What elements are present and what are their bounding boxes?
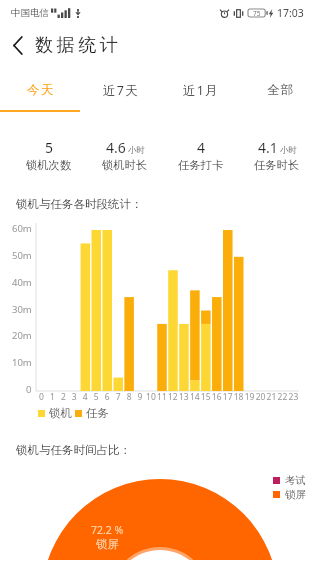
button[interactable]: 近7天 <box>80 74 160 112</box>
staticText: 中国电信 <box>11 7 49 19</box>
button[interactable]: 返回 <box>0 28 36 62</box>
staticText: 锁屏 <box>285 488 306 501</box>
staticText: 任务时长 <box>254 158 300 172</box>
staticText: 4.6 <box>106 138 126 157</box>
staticText: 锁机时长 <box>102 158 148 172</box>
staticText: 75 <box>253 9 261 18</box>
staticText: 锁机 <box>49 406 72 420</box>
staticText: 72.2 % <box>91 523 124 537</box>
staticText: 锁屏 <box>96 537 119 551</box>
staticText: 考试 <box>285 474 306 487</box>
staticText: 锁机与任务时间占比： <box>16 443 131 457</box>
staticText: 任务打卡 <box>178 158 224 172</box>
staticText: 今天 <box>27 82 55 98</box>
staticText: 4 <box>197 138 206 157</box>
staticText: 小时 <box>280 145 297 156</box>
staticText: 全部 <box>267 82 295 98</box>
button[interactable]: 今天 <box>0 74 80 112</box>
staticText: 近1月 <box>183 82 219 99</box>
button[interactable]: 全部 <box>240 74 320 112</box>
staticText: 4.1 <box>258 138 278 157</box>
staticText: 锁机次数 <box>26 158 72 172</box>
staticText: 锁机与任务各时段统计： <box>16 197 143 211</box>
staticText: 近7天 <box>103 82 139 99</box>
staticText: 5 <box>45 138 54 157</box>
staticText: 任务 <box>86 406 109 420</box>
staticText: 17:03 <box>277 6 304 20</box>
staticText: 数据统计 <box>35 34 122 57</box>
staticText: 小时 <box>128 145 145 156</box>
button[interactable]: 近1月 <box>160 74 240 112</box>
